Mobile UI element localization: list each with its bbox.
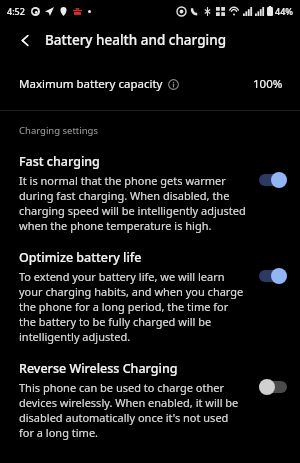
button[interactable]: Maximum battery capacity [0,58,300,110]
staticText: Reverse Wireless Charging [19,360,178,377]
button[interactable]: Reverse Wireless Charging [0,344,300,440]
staticText: This phone can be used to charge other d… [19,380,246,440]
staticText: 100% [253,76,283,92]
button[interactable]: On [259,268,287,284]
staticText: Charging settings [19,124,98,137]
button[interactable]: Off [259,379,287,395]
staticText: It is normal that the phone gets warmer … [19,173,246,233]
staticText: 44% [275,5,293,17]
button[interactable]: On [259,172,287,188]
staticText: To extend your battery life, we will lea… [19,269,246,344]
staticText: 4:52 [7,5,25,17]
staticText: Optimize battery life [19,249,142,266]
staticText: Fast charging [19,153,100,170]
staticText: Battery health and charging [45,31,227,49]
button[interactable]: Back [9,24,41,56]
button[interactable]: Optimize battery life [0,233,300,344]
other: Info [168,79,179,90]
staticText: Maximum battery capacity [19,76,163,92]
button[interactable]: Fast charging [0,139,300,233]
